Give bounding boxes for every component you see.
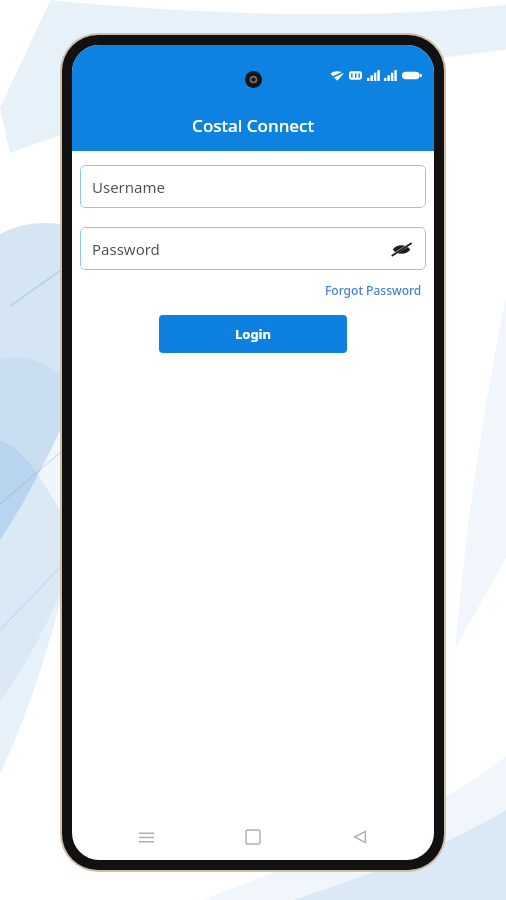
staticText: Username xyxy=(92,177,165,197)
button[interactable]: Toggle password visibility xyxy=(388,236,414,262)
button[interactable]: Username xyxy=(80,165,426,208)
button[interactable]: Login xyxy=(159,315,347,353)
button[interactable]: Password xyxy=(80,227,426,270)
staticText: Costal Connect xyxy=(192,114,314,137)
staticText: Password xyxy=(92,239,160,259)
staticText: Login xyxy=(235,325,271,343)
button[interactable]: Back xyxy=(341,818,379,856)
button[interactable]: Menu xyxy=(127,818,165,856)
staticText: Forgot Password xyxy=(325,282,422,298)
button[interactable]: Forgot Password xyxy=(321,279,426,301)
button[interactable]: Home xyxy=(234,818,272,856)
